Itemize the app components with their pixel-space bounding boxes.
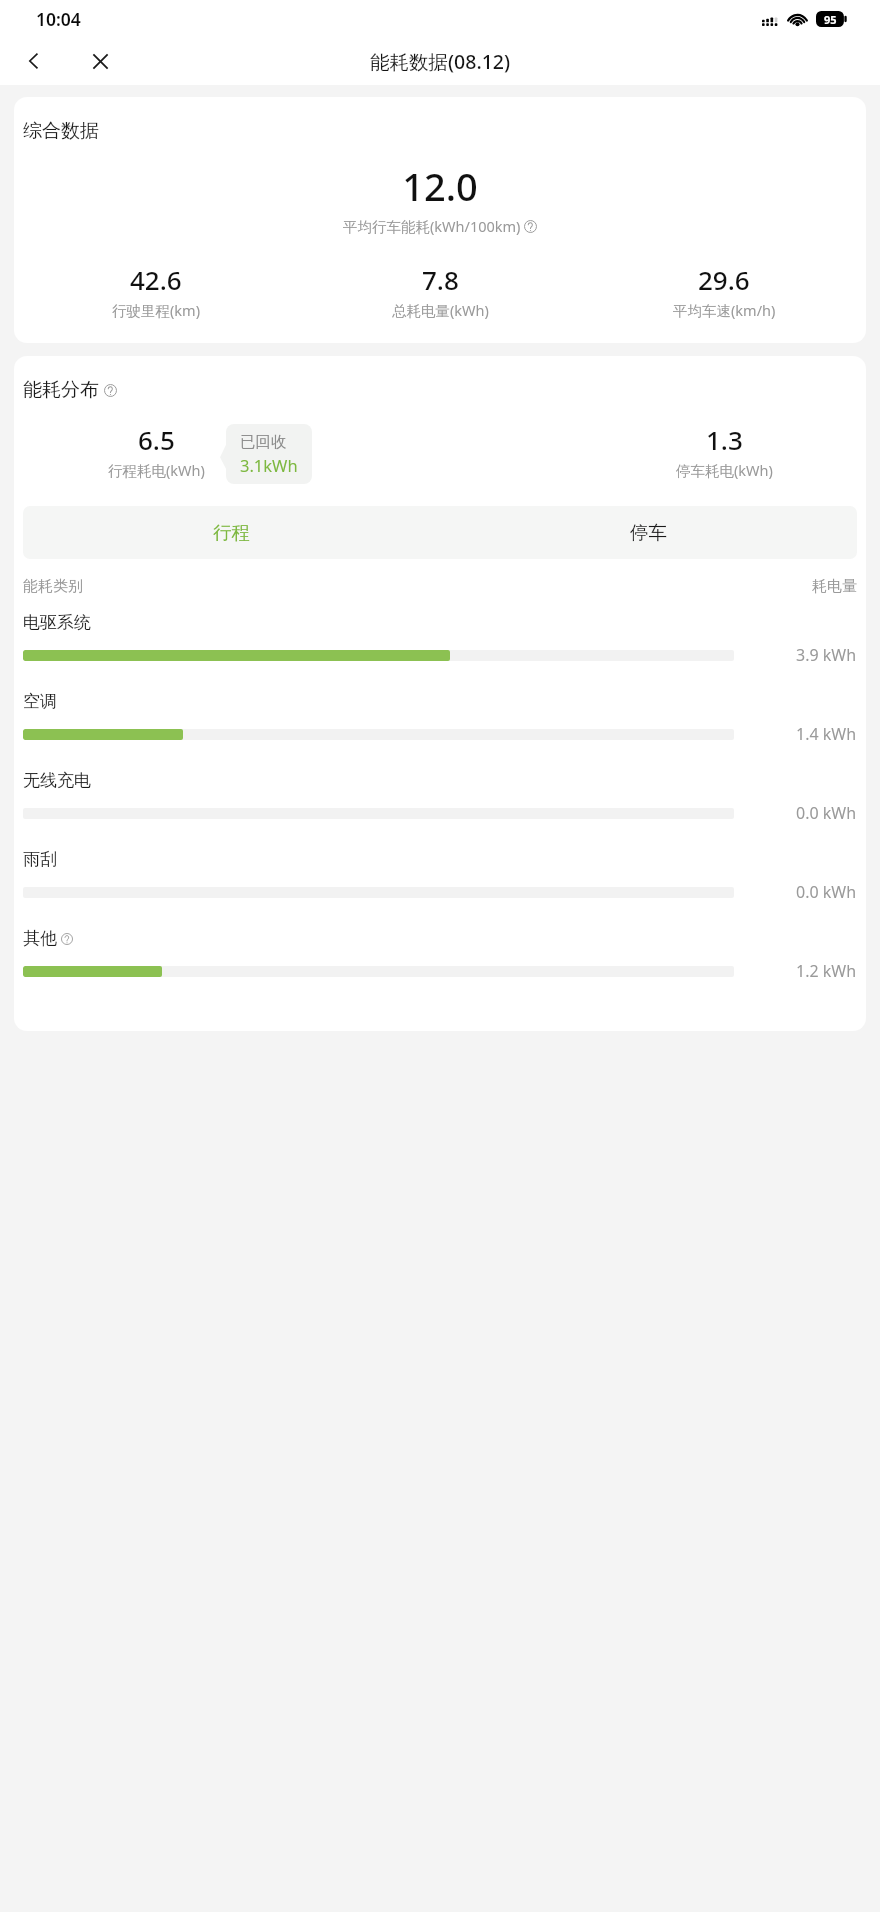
staticText: 总耗电量(kWh) [392, 300, 489, 320]
staticText: 1.4 kWh [796, 723, 857, 745]
staticText: 95 [824, 12, 837, 27]
button[interactable]: Back [14, 41, 54, 81]
staticText: 能耗类别 [23, 577, 83, 596]
staticText: 29.6 [698, 262, 750, 297]
staticText: 停车耗电(kWh) [676, 460, 773, 480]
staticText: 行程耗电(kWh) [108, 460, 205, 480]
staticText: 12.0 [14, 160, 866, 212]
staticText: 10:04 [36, 7, 81, 31]
staticText: 已回收 [240, 432, 287, 452]
staticText: 其他 [23, 928, 57, 949]
staticText: 行程 [213, 521, 250, 544]
staticText: 7.8 [422, 262, 459, 297]
staticText: 综合数据 [23, 119, 99, 143]
staticText: 1.2 kWh [796, 960, 857, 982]
staticText: 雨刮 [23, 849, 57, 870]
staticText: 42.6 [130, 262, 182, 297]
staticText: 能耗数据(08.12) [370, 48, 511, 75]
button[interactable]: 行程 [23, 506, 440, 559]
staticText: 1.3 [706, 422, 743, 457]
staticText: 空调 [23, 691, 57, 712]
staticText: 平均行车能耗(kWh/100km) [343, 216, 521, 236]
staticText: 3.9 kWh [796, 644, 857, 666]
staticText: 0.0 kWh [796, 881, 857, 903]
staticText: 6.5 [138, 422, 175, 457]
staticText: 能耗分布 [23, 378, 99, 402]
button[interactable]: Close [80, 41, 120, 81]
staticText: 行驶里程(km) [112, 300, 201, 320]
staticText: 停车 [630, 521, 667, 544]
staticText: 无线充电 [23, 770, 91, 791]
staticText: 0.0 kWh [796, 802, 857, 824]
staticText: 耗电量 [812, 577, 857, 596]
button[interactable]: 停车 [440, 506, 857, 559]
staticText: 电驱系统 [23, 612, 91, 633]
staticText: 3.1kWh [240, 454, 298, 476]
staticText: 平均车速(km/h) [673, 300, 776, 320]
